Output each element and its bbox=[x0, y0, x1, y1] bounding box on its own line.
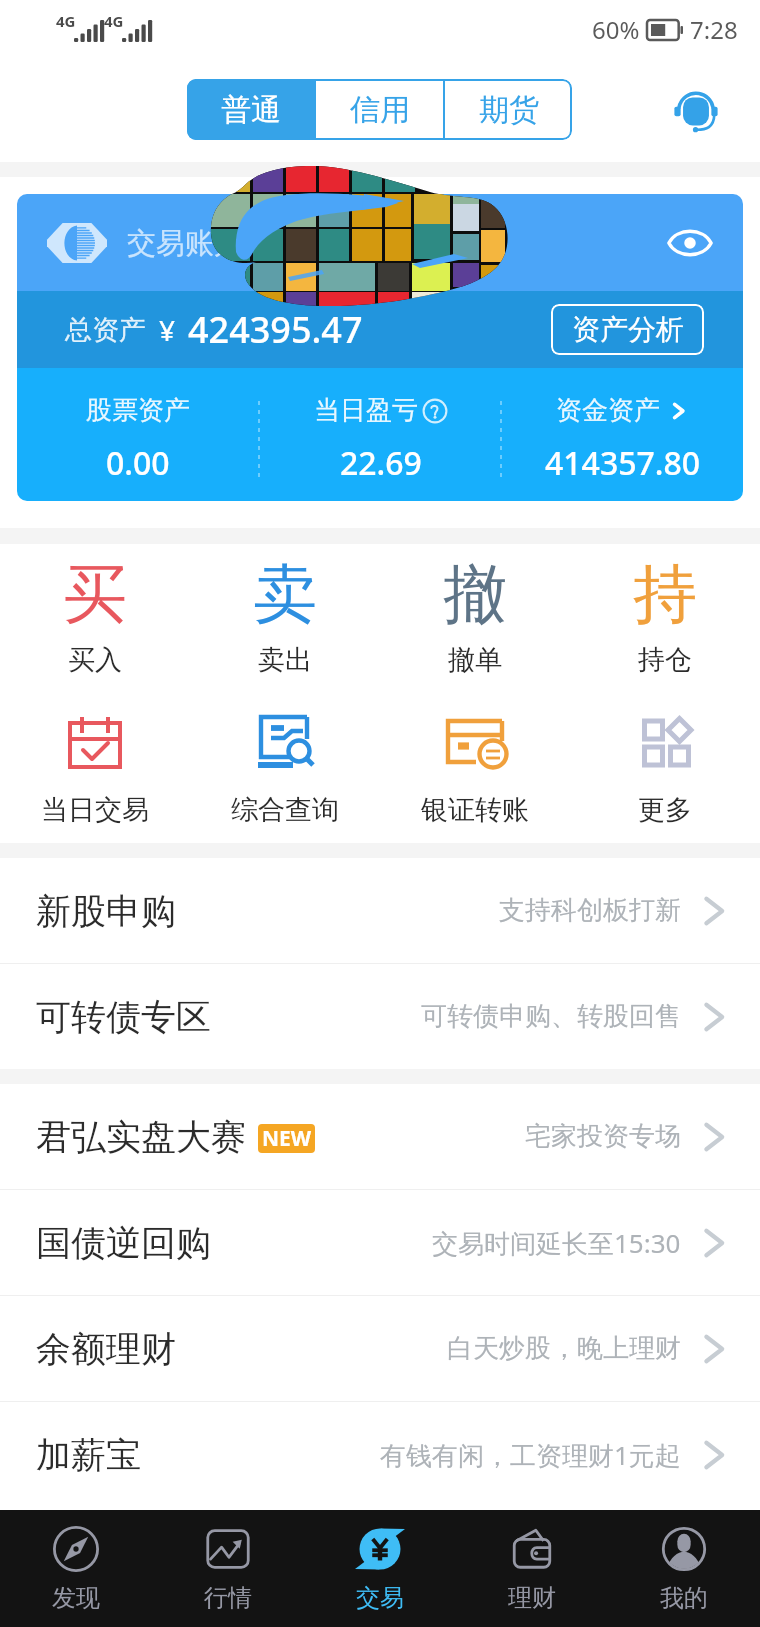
staticText: 当日交易 bbox=[41, 793, 149, 827]
button[interactable]: 加薪宝 bbox=[0, 1402, 760, 1507]
staticText: 卖 bbox=[253, 554, 317, 635]
staticText: 新股申购 bbox=[36, 889, 176, 933]
button[interactable]: 余额理财 bbox=[0, 1296, 760, 1401]
staticText: 卖出 bbox=[258, 643, 312, 677]
staticText: 可转债申购、转股回售 bbox=[421, 1000, 681, 1033]
button[interactable]: 理财 bbox=[456, 1510, 608, 1627]
button[interactable]: 当日交易 bbox=[0, 713, 190, 827]
staticText: 理财 bbox=[508, 1583, 556, 1613]
staticText: 我的 bbox=[660, 1583, 708, 1613]
button[interactable]: 行情 bbox=[152, 1510, 304, 1627]
staticText: 撤 bbox=[443, 554, 507, 635]
staticText: 国债逆回购 bbox=[36, 1221, 211, 1265]
staticText: 交易 bbox=[356, 1583, 404, 1613]
staticText: 7:28 bbox=[690, 13, 738, 46]
staticText: 股票资产 bbox=[86, 394, 190, 427]
staticText: 22.69 bbox=[340, 441, 422, 485]
staticText: 有钱有闲，工资理财1元起 bbox=[380, 1437, 681, 1473]
button[interactable]: 当日盈亏 bbox=[260, 394, 501, 485]
button[interactable]: 卖 bbox=[190, 554, 380, 677]
staticText: 期货 bbox=[479, 91, 539, 129]
button[interactable]: 银证转账 bbox=[380, 713, 570, 827]
button[interactable]: 新股申购 bbox=[0, 858, 760, 963]
staticText: 加薪宝 bbox=[36, 1433, 141, 1477]
button[interactable]: Customer service bbox=[670, 85, 722, 137]
button[interactable]: 期货 bbox=[445, 79, 572, 140]
staticText: 白天炒股，晚上理财 bbox=[447, 1332, 681, 1365]
staticText: 资产分析 bbox=[572, 312, 684, 347]
button[interactable]: 国债逆回购 bbox=[0, 1190, 760, 1295]
staticText: 支持科创板打新 bbox=[499, 894, 681, 927]
button[interactable]: 资产分析 bbox=[551, 304, 704, 355]
staticText: 总资产 bbox=[65, 313, 146, 347]
staticText: 60% bbox=[592, 13, 640, 46]
button[interactable]: 普通 bbox=[187, 79, 314, 140]
button[interactable]: 更多 bbox=[570, 713, 760, 827]
button[interactable]: 交易 bbox=[304, 1510, 456, 1627]
staticText: 银证转账 bbox=[421, 793, 529, 827]
staticText: 余额理财 bbox=[36, 1327, 176, 1371]
staticText: 行情 bbox=[204, 1583, 252, 1613]
button[interactable]: 买 bbox=[0, 554, 190, 677]
staticText: 综合查询 bbox=[231, 793, 339, 827]
staticText: ¥ bbox=[159, 311, 176, 349]
staticText: 撤单 bbox=[448, 643, 502, 677]
button[interactable]: 发现 bbox=[0, 1510, 152, 1627]
button[interactable]: 撤 bbox=[380, 554, 570, 677]
staticText: 信用 bbox=[350, 91, 410, 129]
staticText: 424395.47 bbox=[188, 305, 363, 354]
button[interactable]: 我的 bbox=[608, 1510, 760, 1627]
button[interactable]: 综合查询 bbox=[190, 713, 380, 827]
staticText: 买入 bbox=[68, 643, 122, 677]
button[interactable]: 资金资产 bbox=[502, 394, 743, 485]
staticText: 交易时间延长至15:30 bbox=[432, 1225, 681, 1261]
button[interactable]: 可转债专区 bbox=[0, 964, 760, 1069]
staticText: 持仓 bbox=[638, 643, 692, 677]
button[interactable]: 君弘实盘大赛 bbox=[0, 1084, 760, 1189]
staticText: 0.00 bbox=[106, 441, 170, 485]
staticText: 发现 bbox=[52, 1583, 100, 1613]
staticText: 交易账户 bbox=[127, 225, 243, 262]
staticText: 买 bbox=[63, 554, 127, 635]
button[interactable]: Toggle balance visibility bbox=[665, 218, 715, 268]
button[interactable]: 信用 bbox=[316, 79, 443, 140]
staticText: 资金资产 bbox=[556, 394, 660, 427]
button[interactable]: 持 bbox=[570, 554, 760, 677]
staticText: 当日盈亏 bbox=[314, 394, 418, 427]
staticText: 持 bbox=[633, 554, 697, 635]
staticText: 414357.80 bbox=[545, 441, 701, 485]
staticText: 君弘实盘大赛 bbox=[36, 1115, 246, 1159]
staticText: 4G bbox=[104, 11, 124, 31]
staticText: NEW bbox=[262, 1124, 312, 1153]
staticText: 宅家投资专场 bbox=[525, 1120, 681, 1153]
staticText: 普通 bbox=[221, 91, 281, 129]
staticText: 可转债专区 bbox=[36, 995, 211, 1039]
staticText: 更多 bbox=[638, 793, 692, 827]
button[interactable]: 股票资产 bbox=[17, 394, 259, 485]
staticText: 4G bbox=[56, 11, 76, 31]
